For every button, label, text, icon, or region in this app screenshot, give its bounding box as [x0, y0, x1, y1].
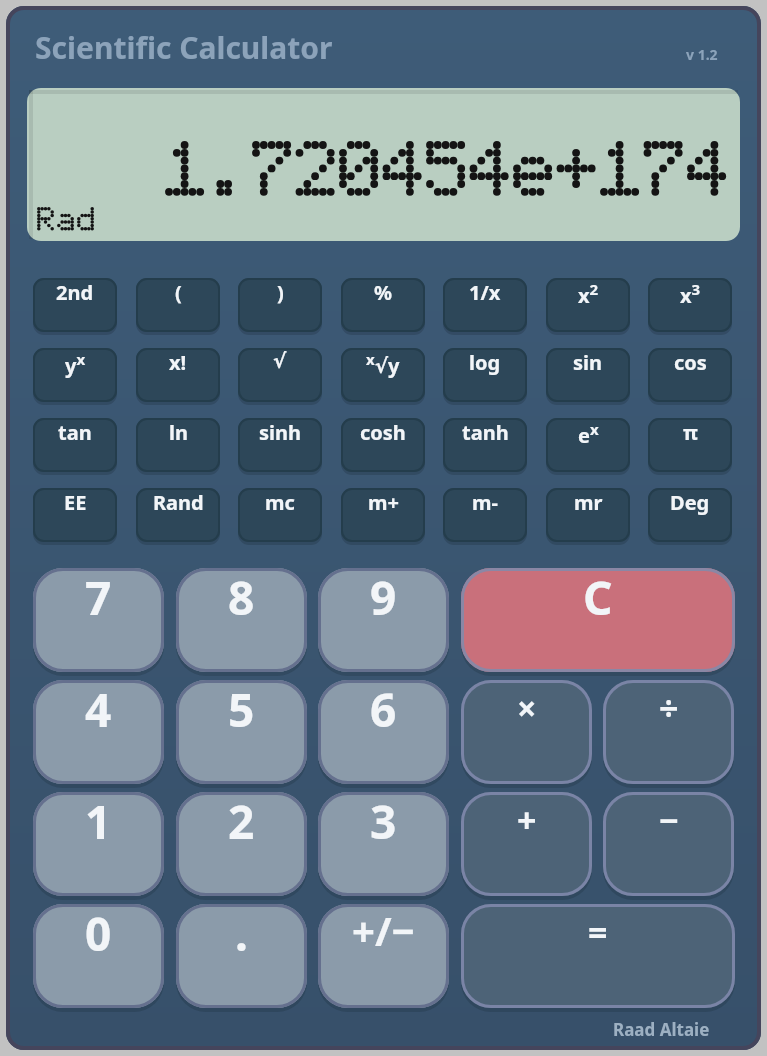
staticText: 0: [85, 902, 112, 965]
staticText: −: [659, 797, 679, 843]
staticText: EE: [64, 489, 87, 516]
staticText: Raad Altaie: [613, 1018, 710, 1041]
staticText: x!: [169, 349, 187, 376]
staticText: ×: [517, 685, 537, 731]
staticText: tanh: [462, 419, 509, 446]
staticText: √: [273, 349, 287, 372]
staticText: 1/x: [469, 279, 501, 306]
staticText: 2: [228, 790, 255, 853]
staticText: cosh: [360, 419, 406, 446]
staticText: 1: [85, 790, 112, 853]
staticText: cos: [674, 349, 707, 376]
staticText: Rand: [153, 489, 204, 516]
staticText: C: [583, 566, 613, 629]
staticText: x√y: [366, 349, 400, 379]
staticText: +: [517, 797, 537, 843]
staticText: Scientific Calculator: [35, 27, 333, 68]
staticText: +/−: [352, 903, 415, 957]
staticText: yx: [65, 349, 86, 379]
staticText: v 1.2: [686, 45, 718, 64]
staticText: 6: [370, 678, 397, 741]
staticText: sin: [573, 349, 603, 376]
staticText: log: [469, 349, 501, 376]
staticText: mc: [265, 489, 295, 516]
staticText: 3: [370, 790, 397, 853]
staticText: sinh: [259, 419, 302, 446]
staticText: ÷: [659, 685, 679, 731]
staticText: ): [277, 279, 284, 306]
staticText: mr: [574, 489, 603, 516]
staticText: 5: [228, 678, 255, 741]
staticText: tan: [58, 419, 92, 446]
staticText: 4: [85, 678, 112, 741]
staticText: (: [175, 279, 182, 306]
staticText: ln: [169, 419, 188, 446]
staticText: %: [374, 279, 393, 306]
staticText: π: [683, 419, 698, 446]
staticText: .: [235, 902, 248, 965]
staticText: m-: [472, 489, 498, 516]
staticText: 7: [85, 566, 112, 629]
staticText: 8: [228, 566, 255, 629]
staticText: 2nd: [56, 279, 94, 306]
staticText: Deg: [670, 489, 710, 516]
staticText: ex: [578, 419, 599, 449]
staticText: =: [588, 909, 608, 955]
staticText: m+: [368, 489, 399, 516]
staticText: x3: [680, 279, 701, 309]
staticText: 9: [370, 566, 397, 629]
staticText: x2: [578, 279, 599, 309]
